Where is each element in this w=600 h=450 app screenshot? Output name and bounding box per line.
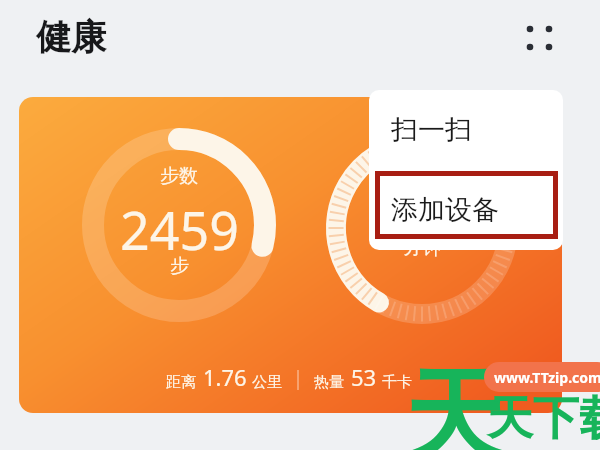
button[interactable]: More options bbox=[514, 12, 566, 64]
staticText: www.TTzip.com bbox=[494, 368, 600, 387]
staticText: 53 bbox=[351, 362, 377, 392]
staticText: 2459 bbox=[120, 194, 239, 265]
staticText: 1.76 bbox=[203, 362, 247, 392]
button[interactable]: 步数 bbox=[19, 97, 562, 413]
button[interactable]: 添加设备 bbox=[369, 170, 563, 250]
staticText: 添加设备 bbox=[391, 193, 499, 227]
button[interactable]: 扫一扫 bbox=[369, 90, 563, 170]
staticText: 分钟 bbox=[403, 236, 441, 260]
staticText: 天 bbox=[404, 355, 504, 450]
staticText: 天下载 bbox=[487, 390, 600, 448]
staticText: 距离 bbox=[166, 373, 196, 392]
button[interactable]: 健康 bbox=[36, 15, 106, 59]
staticText: 公里 bbox=[252, 373, 282, 392]
staticText: 千卡 bbox=[382, 373, 412, 392]
staticText: 热量 bbox=[314, 373, 344, 392]
staticText: 扫一扫 bbox=[391, 113, 472, 147]
staticText: 步数 bbox=[160, 164, 198, 188]
staticText: 步 bbox=[170, 254, 189, 278]
staticText: 健康 bbox=[36, 15, 106, 59]
